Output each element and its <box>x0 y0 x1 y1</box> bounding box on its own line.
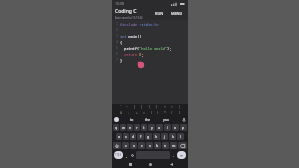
staticText: w <box>122 125 125 130</box>
button[interactable]: , <box>124 151 129 159</box>
staticText: 6 <box>116 52 118 56</box>
button[interactable]: ?123 <box>114 151 123 159</box>
button[interactable]: k <box>169 133 176 140</box>
button[interactable]: a <box>116 133 122 140</box>
button[interactable]: m <box>170 142 177 149</box>
button[interactable]: j <box>161 133 168 140</box>
button[interactable]: n <box>162 142 169 149</box>
button[interactable]: Emoji <box>114 117 119 122</box>
staticText: 7 <box>116 58 118 62</box>
button[interactable]: you <box>163 117 169 122</box>
staticText: a <box>118 134 121 139</box>
staticText: e <box>129 125 132 130</box>
staticText: * <box>164 111 166 115</box>
staticText: i <box>167 125 168 130</box>
staticText: v <box>149 143 151 148</box>
staticText: c <box>141 143 143 148</box>
button[interactable]: p <box>180 124 187 131</box>
staticText: > <box>171 105 173 109</box>
button[interactable]: s <box>123 133 129 140</box>
staticText: } <box>120 58 123 63</box>
button[interactable]: i <box>164 124 171 131</box>
button[interactable]: f <box>137 133 144 140</box>
staticText: z <box>125 143 127 148</box>
button[interactable]: MENU <box>169 9 185 18</box>
staticText: 4 <box>116 40 118 44</box>
button[interactable]: r <box>134 124 140 131</box>
button[interactable]: to <box>130 117 134 122</box>
staticText: o <box>174 125 177 130</box>
staticText: f <box>140 134 142 139</box>
staticText: { <box>120 40 123 45</box>
button[interactable]: Enter <box>177 151 186 159</box>
staticText: 1 <box>116 22 118 26</box>
staticText: h <box>155 134 158 139</box>
staticText: \ <box>179 111 181 115</box>
button[interactable]: y <box>148 124 155 131</box>
button[interactable]: l <box>177 133 184 140</box>
button[interactable]: Backspace <box>178 142 187 149</box>
staticText: g <box>147 134 150 139</box>
staticText: < <box>164 105 166 109</box>
staticText: t <box>143 125 145 130</box>
staticText: MENU <box>171 11 183 16</box>
button[interactable]: Home <box>147 161 153 167</box>
button[interactable]: h <box>153 133 160 140</box>
button[interactable]: o <box>172 124 179 131</box>
button[interactable]: x <box>130 142 137 149</box>
button[interactable]: u <box>156 124 163 131</box>
staticText: RUN <box>155 11 164 16</box>
staticText: n <box>164 143 167 148</box>
button[interactable]: RUN <box>153 9 166 18</box>
staticText: ) <box>157 111 158 115</box>
staticText: printf("hello world"); <box>124 46 172 51</box>
button[interactable]: e <box>127 124 133 131</box>
button[interactable]: q <box>113 124 119 131</box>
staticText: p <box>182 125 185 130</box>
button[interactable]: g <box>145 133 152 140</box>
button[interactable]: Back <box>127 161 133 167</box>
staticText: 3 <box>116 34 118 38</box>
staticText: u <box>158 125 161 130</box>
button[interactable]: Shift <box>113 142 121 149</box>
staticText: m <box>172 143 176 148</box>
staticText: , <box>126 153 127 158</box>
staticText: ~ <box>126 105 128 109</box>
staticText: ] <box>141 105 143 109</box>
staticText: j <box>164 134 165 139</box>
button[interactable]: Voice input <box>181 117 186 122</box>
staticText: s <box>125 134 127 139</box>
button[interactable]: Recents <box>168 161 174 167</box>
staticText: { <box>149 105 151 109</box>
staticText: # <box>120 111 123 115</box>
staticText: 2 <box>116 28 118 32</box>
button[interactable]: t <box>141 124 147 131</box>
staticText: } <box>156 105 158 109</box>
staticText: ( <box>151 111 152 115</box>
button[interactable]: w <box>120 124 126 131</box>
button[interactable]: b <box>154 142 161 149</box>
button[interactable]: Settings <box>130 151 135 159</box>
button[interactable]: d <box>130 133 136 140</box>
staticText: + <box>136 111 138 115</box>
staticText: [ <box>134 105 136 109</box>
button[interactable]: . <box>171 151 176 159</box>
staticText: = <box>143 111 145 115</box>
staticText: b <box>156 143 159 148</box>
staticText: d <box>132 134 135 139</box>
staticText: y <box>151 125 153 130</box>
staticText: - <box>128 111 130 115</box>
staticText: Coding C <box>115 8 137 15</box>
staticText: Auto saved at 10:19:44 <box>115 16 143 20</box>
staticText: #include <stdio.h> <box>120 22 159 27</box>
staticText: k <box>172 134 174 139</box>
button[interactable]: the <box>145 117 151 122</box>
button[interactable]: c <box>138 142 145 149</box>
staticText: ' <box>120 105 121 109</box>
staticText: / <box>171 111 173 115</box>
button[interactable]: z <box>122 142 129 149</box>
button[interactable]: v <box>146 142 153 149</box>
staticText: 5 <box>116 46 118 50</box>
staticText: . <box>173 153 174 158</box>
